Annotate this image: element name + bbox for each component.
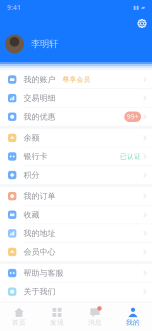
staticText: 我的 — [126, 318, 140, 327]
staticText: 余额 — [23, 133, 39, 143]
staticText: 我的地址 — [23, 228, 55, 238]
button[interactable]: 我的账户 — [0, 70, 152, 89]
staticText: 9:41 — [7, 3, 21, 12]
staticText: 我的订单 — [23, 191, 55, 201]
staticText: 消息 — [88, 318, 102, 327]
staticText: 交易明细 — [23, 93, 55, 103]
staticText: 帮助与客服 — [23, 268, 63, 278]
button[interactable]: 会员中心 — [0, 243, 152, 261]
staticText: 银行卡 — [23, 151, 47, 161]
button[interactable]: 首页 — [0, 303, 38, 331]
staticText: 我的优惠 — [23, 112, 55, 122]
staticText: 99+ — [127, 112, 139, 121]
staticText: 关于我们 — [23, 287, 55, 296]
staticText: 李明轩 — [31, 38, 58, 50]
button[interactable]: Settings — [135, 16, 149, 31]
button[interactable]: 积分 — [0, 166, 152, 184]
button[interactable]: 银行卡 — [0, 147, 152, 165]
button[interactable]: 收藏 — [0, 206, 152, 224]
staticText: 发现 — [50, 318, 64, 327]
button[interactable]: 我的地址 — [0, 224, 152, 242]
button[interactable]: 关于我们 — [0, 283, 152, 301]
button[interactable]: 消息 — [76, 303, 114, 331]
staticText: 已认证 — [120, 152, 141, 161]
button[interactable]: 李明轩 — [0, 32, 152, 56]
staticText: 收藏 — [23, 210, 39, 220]
staticText: ▮▮ ▰ — [133, 4, 145, 11]
button[interactable]: 交易明细 — [0, 89, 152, 107]
staticText: 会员中心 — [23, 247, 55, 257]
staticText: 积分 — [23, 170, 39, 180]
button[interactable]: 我的优惠 — [0, 108, 152, 126]
button[interactable]: 余额 — [0, 129, 152, 147]
button[interactable]: 帮助与客服 — [0, 264, 152, 282]
button[interactable]: 我的订单 — [0, 187, 152, 205]
staticText: 首页 — [12, 318, 26, 327]
button[interactable]: 我的 — [114, 303, 152, 331]
staticText: 我的账户 — [23, 75, 55, 84]
button[interactable]: 发现 — [38, 303, 76, 331]
staticText: 尊享会员 — [62, 75, 90, 84]
